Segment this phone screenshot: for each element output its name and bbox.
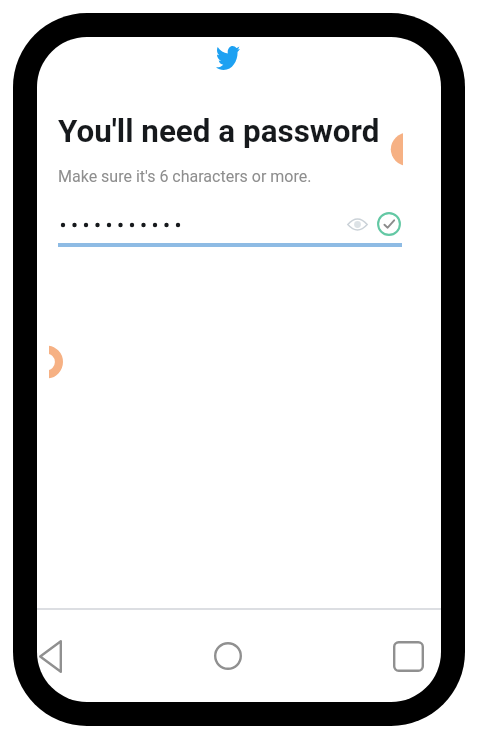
button[interactable]: Show password xyxy=(342,209,372,239)
button[interactable]: Back xyxy=(37,633,73,679)
staticText: Make sure it's 6 characters or more. xyxy=(58,167,312,186)
button[interactable]: Password xyxy=(58,215,208,235)
button[interactable]: Password valid xyxy=(375,210,403,238)
button[interactable]: Recent apps xyxy=(385,633,431,679)
button[interactable]: Home xyxy=(205,633,251,679)
staticText: You'll need a password xyxy=(58,113,380,150)
